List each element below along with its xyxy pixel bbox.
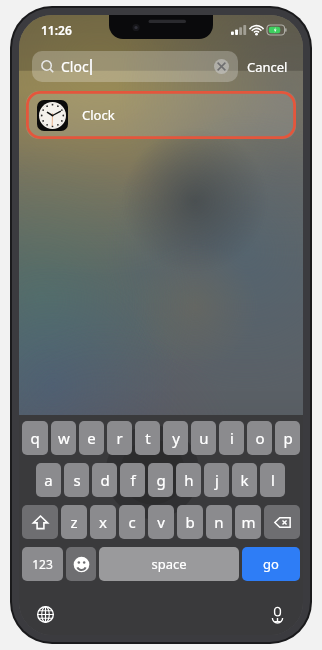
staticText: w [58, 428, 70, 448]
staticText: l [271, 470, 275, 490]
button[interactable]: s [64, 463, 89, 497]
staticText: n [214, 512, 224, 532]
staticText: d [100, 470, 110, 490]
button[interactable]: k [232, 463, 257, 497]
button[interactable]: x [90, 505, 116, 539]
staticText: u [199, 428, 209, 448]
button[interactable]: Clock [26, 91, 296, 139]
staticText: o [255, 428, 265, 448]
button[interactable]: n [206, 505, 232, 539]
button[interactable]: e [79, 421, 104, 455]
staticText: Cancel [247, 58, 288, 76]
staticText: Clock [82, 106, 115, 124]
button[interactable]: c [119, 505, 145, 539]
staticText: 11:26 [41, 22, 72, 38]
button[interactable]: Clear text [214, 59, 229, 74]
button[interactable]: d [92, 463, 117, 497]
staticText: Cloc [61, 57, 89, 76]
button[interactable]: f [120, 463, 145, 497]
button[interactable]: z [61, 505, 87, 539]
button[interactable]: j [204, 463, 229, 497]
button[interactable]: m [235, 505, 261, 539]
button[interactable]: Dictate [264, 601, 290, 627]
staticText: 123 [32, 556, 53, 572]
staticText: z [70, 512, 78, 532]
button[interactable]: p [275, 421, 300, 455]
button[interactable]: l [260, 463, 285, 497]
button[interactable]: o [247, 421, 272, 455]
button[interactable]: u [191, 421, 216, 455]
staticText: m [241, 512, 256, 532]
button[interactable]: v [148, 505, 174, 539]
button[interactable]: b [177, 505, 203, 539]
button[interactable]: r [107, 421, 132, 455]
staticText: x [99, 512, 107, 532]
button[interactable]: i [219, 421, 244, 455]
staticText: k [240, 470, 249, 490]
button[interactable]: Emoji [66, 547, 96, 581]
staticText: b [185, 512, 195, 532]
staticText: s [73, 470, 81, 490]
staticText: f [130, 470, 136, 490]
staticText: t [145, 428, 151, 448]
button[interactable]: t [135, 421, 160, 455]
button[interactable]: q [22, 421, 48, 455]
button[interactable]: Cancel [238, 52, 290, 82]
button[interactable]: 123 [22, 547, 63, 581]
button[interactable]: Change keyboard language [32, 601, 58, 627]
staticText: a [44, 470, 53, 490]
button[interactable]: Shift [22, 505, 58, 539]
staticText: r [116, 428, 123, 448]
button[interactable]: go [242, 547, 300, 581]
button[interactable]: y [163, 421, 188, 455]
staticText: i [230, 428, 234, 448]
staticText: y [172, 428, 180, 448]
staticText: space [151, 555, 187, 573]
button[interactable]: Cloc [32, 51, 238, 82]
button[interactable]: h [176, 463, 201, 497]
staticText: p [283, 428, 293, 448]
staticText: g [156, 470, 166, 490]
staticText: j [215, 470, 219, 490]
button[interactable]: g [148, 463, 173, 497]
staticText: e [87, 428, 96, 448]
staticText: go [263, 555, 279, 573]
button[interactable]: a [36, 463, 61, 497]
staticText: q [30, 428, 40, 448]
staticText: v [157, 512, 165, 532]
button[interactable]: w [51, 421, 76, 455]
staticText: c [128, 512, 136, 532]
button[interactable]: Backspace [264, 505, 300, 539]
button[interactable]: space [99, 547, 239, 581]
staticText: h [184, 470, 194, 490]
